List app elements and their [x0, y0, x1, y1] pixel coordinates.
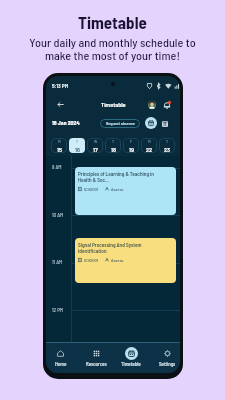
staticText: 17	[93, 146, 98, 153]
staticText: 18	[111, 146, 116, 153]
staticText: F	[130, 139, 133, 144]
staticText: Request absence	[106, 121, 135, 126]
staticText: M	[58, 139, 61, 144]
staticText: Home	[55, 361, 67, 367]
button[interactable]: Calendar view	[145, 117, 157, 129]
staticText: Timetable	[101, 101, 126, 108]
staticText: Principles of Learning & Teaching in Hea…	[78, 171, 154, 183]
button[interactable]: Principles of Learning & Teaching in Hea…	[75, 167, 176, 215]
button[interactable]: Request absence	[100, 119, 140, 128]
staticText: Timetable	[121, 361, 141, 367]
button[interactable]: W	[87, 138, 103, 153]
staticText: ICH2001	[84, 257, 99, 262]
staticText: 11 AM	[52, 259, 63, 265]
staticText: 16 Jan 2024	[52, 119, 80, 126]
staticText: T	[112, 139, 115, 144]
staticText: T	[166, 139, 169, 144]
button[interactable]: Home	[46, 342, 77, 373]
staticText: 19	[129, 146, 134, 153]
button[interactable]: Back	[53, 97, 67, 111]
staticText: 1 PM	[52, 354, 61, 360]
staticText: 12 PM	[52, 307, 64, 313]
staticText: Timetable	[78, 12, 147, 32]
staticText: 10 AM	[52, 212, 64, 218]
button[interactable]: M	[141, 138, 157, 153]
button[interactable]: Settings	[150, 342, 180, 373]
button[interactable]: M	[51, 138, 67, 153]
button[interactable]: T	[105, 138, 121, 153]
button[interactable]: T	[159, 138, 175, 153]
button[interactable]: F	[123, 138, 139, 153]
staticText: Your daily and monthly schedule to make …	[29, 35, 196, 62]
staticText: 9 AM	[52, 164, 62, 170]
staticText: Resources	[86, 361, 107, 367]
button[interactable]: Signal Processing And System Identificat…	[75, 238, 176, 283]
staticText: 22	[146, 146, 153, 153]
staticText: M	[148, 139, 151, 144]
button[interactable]: T	[69, 138, 85, 153]
button[interactable]: List view	[159, 118, 170, 129]
button[interactable]: Notifications	[161, 99, 172, 110]
button[interactable]: Resources	[79, 342, 113, 373]
staticText: Assess.	[111, 186, 125, 191]
staticText: Signal Processing And System Identificat…	[78, 242, 142, 254]
staticText: W	[94, 139, 98, 144]
staticText: 16	[75, 146, 80, 153]
button[interactable]: Timetable	[114, 342, 148, 373]
staticText: Settings	[159, 361, 176, 367]
staticText: 15	[57, 146, 62, 153]
staticText: ICH2001	[84, 186, 99, 191]
staticText: T	[76, 139, 79, 144]
button[interactable]: Profile	[146, 99, 157, 110]
staticText: 5:13 PM	[52, 82, 69, 89]
staticText: Assess.	[111, 257, 125, 262]
staticText: 23	[164, 146, 170, 153]
